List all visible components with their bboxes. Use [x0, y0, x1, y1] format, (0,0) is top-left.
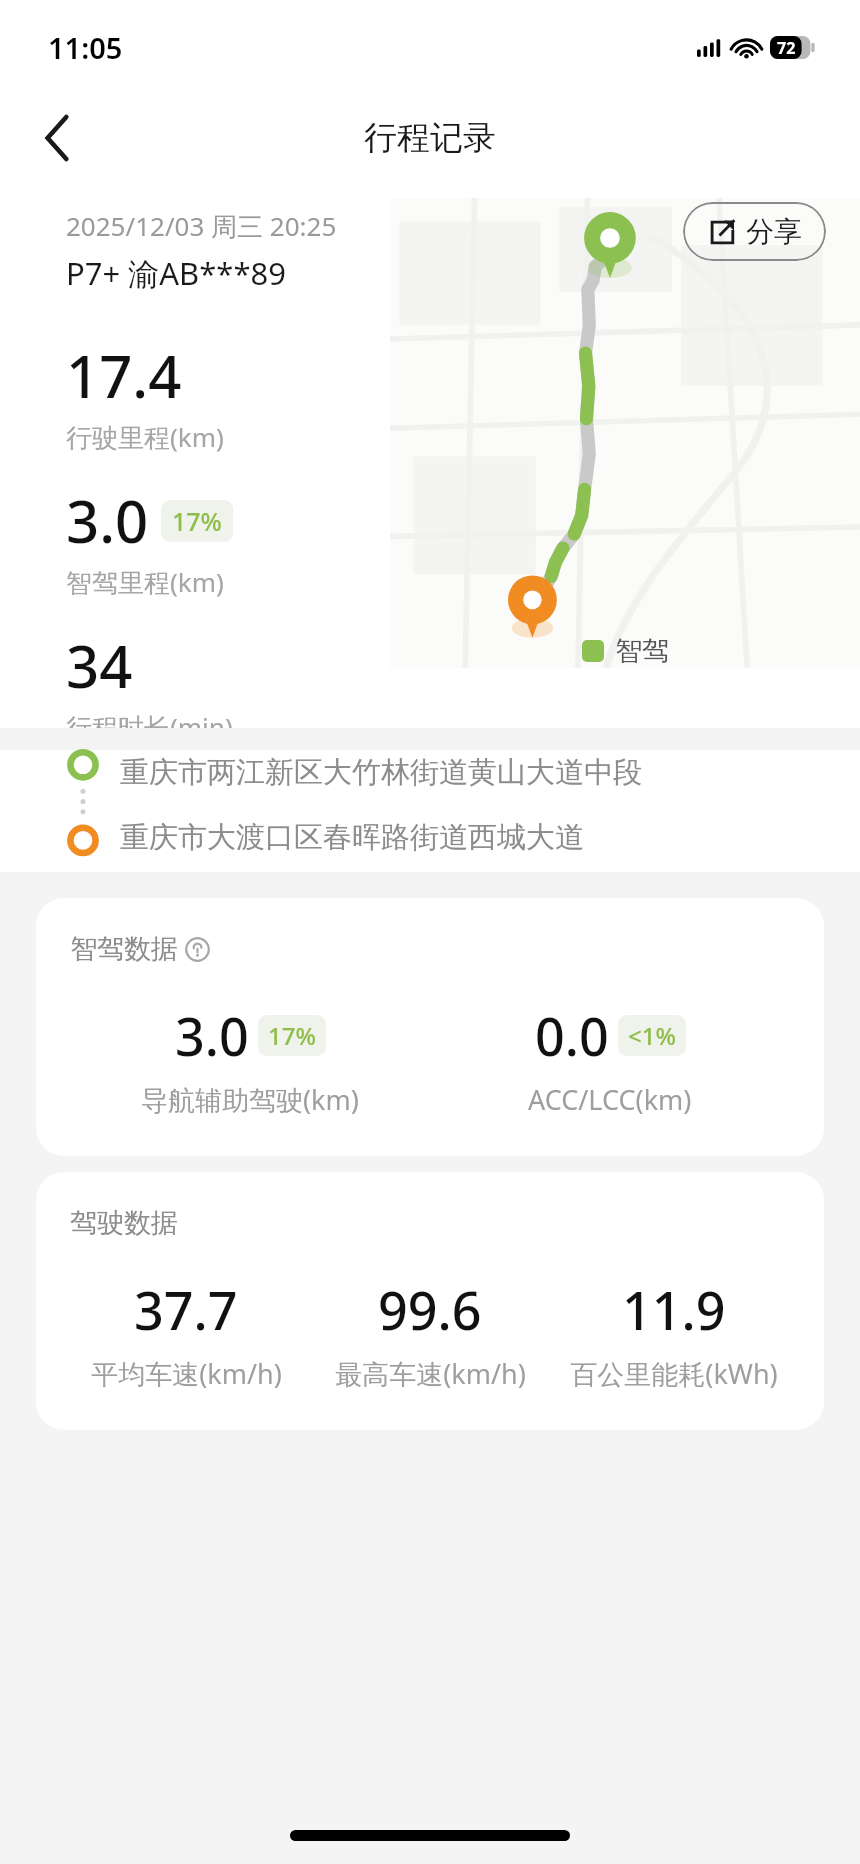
staticText: 驾驶数据 [70, 1206, 178, 1240]
staticText: <1% [628, 1019, 676, 1052]
staticText: 百公里能耗(kWh) [570, 1355, 778, 1392]
staticText: 重庆市两江新区大竹林街道黄山大道中段 [120, 754, 642, 791]
staticText: 最高车速(km/h) [335, 1355, 526, 1392]
staticText: 导航辅助驾驶(km) [141, 1081, 359, 1118]
staticText: 行驶里程(km) [66, 419, 224, 455]
staticText: 智驾 [615, 634, 669, 668]
button[interactable]: 驾驶数据 [36, 1172, 824, 1430]
staticText: 2025/12/03 周三 20:25 [66, 208, 337, 244]
staticText: 3.0 [66, 481, 149, 560]
staticText: 重庆市大渡口区春晖路街道西城大道 [120, 819, 584, 856]
staticText: 37.7 [134, 1274, 238, 1345]
staticText: P7+ 渝AB***89 [66, 252, 286, 294]
staticText: ACC/LCC(km) [528, 1081, 692, 1118]
button[interactable]: 智驾数据 [36, 898, 824, 1156]
staticText: 平均车速(km/h) [91, 1355, 282, 1392]
staticText: 17% [268, 1019, 316, 1052]
staticText: 智驾数据 [70, 932, 178, 966]
staticText: 34 [66, 626, 133, 705]
staticText: 分享 [746, 214, 802, 249]
button[interactable]: Back [26, 106, 90, 170]
staticText: 3.0 [175, 1000, 249, 1071]
staticText: 99.6 [378, 1274, 482, 1345]
staticText: 72 [777, 37, 796, 59]
staticText: 17% [172, 504, 222, 538]
button[interactable]: 分享 [683, 202, 826, 261]
staticText: 智驾里程(km) [66, 564, 224, 600]
staticText: 11:05 [48, 28, 123, 67]
staticText: 行程时长(min) [66, 709, 233, 728]
staticText: 17.4 [66, 336, 182, 415]
staticText: 11.9 [622, 1274, 726, 1345]
staticText: 行程记录 [364, 117, 496, 159]
staticText: 0.0 [535, 1000, 609, 1071]
